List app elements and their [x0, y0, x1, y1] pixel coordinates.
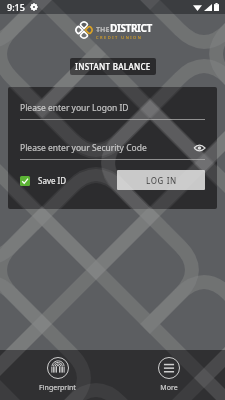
- button[interactable]: Please enter your Security Code: [20, 142, 205, 160]
- staticText: Please enter your Security Code: [20, 142, 147, 154]
- button[interactable]: Fingerprint: [23, 353, 92, 397]
- staticText: DISTRICT: [110, 21, 152, 35]
- button[interactable]: Please enter your Logon ID: [20, 102, 205, 120]
- button[interactable]: More: [142, 353, 196, 397]
- staticText: INSTANT BALANCE: [75, 61, 151, 72]
- staticText: More: [160, 383, 178, 393]
- button[interactable]: Save ID: [20, 175, 67, 186]
- button[interactable]: INSTANT BALANCE: [70, 58, 156, 75]
- staticText: LOG IN: [146, 175, 177, 186]
- staticText: Please enter your Logon ID: [20, 102, 129, 114]
- staticText: 9:15: [7, 1, 25, 13]
- staticText: Save ID: [38, 175, 67, 186]
- staticText: Fingerprint: [39, 383, 76, 393]
- button[interactable]: LOG IN: [117, 170, 205, 190]
- other: Settings: [30, 3, 38, 11]
- staticText: CREDIT UNION: [96, 35, 143, 40]
- staticText: THE: [96, 25, 110, 35]
- other: Show password: [194, 144, 205, 152]
